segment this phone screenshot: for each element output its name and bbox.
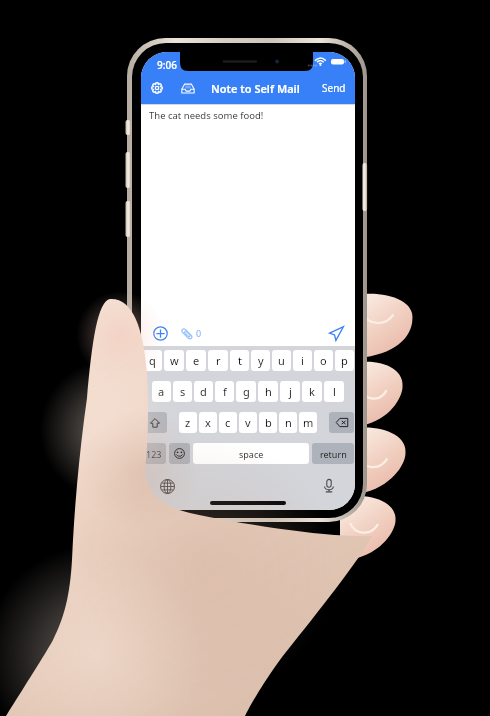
staticText: u — [278, 353, 285, 368]
staticText: l — [333, 384, 336, 399]
staticText: r — [216, 353, 221, 368]
button[interactable]: l — [324, 381, 344, 402]
button[interactable]: Dictation — [320, 477, 338, 495]
staticText: 9:06 — [157, 58, 177, 72]
button[interactable]: Settings — [145, 76, 169, 100]
staticText: c — [225, 415, 231, 430]
staticText: 123 — [146, 448, 162, 460]
button[interactable]: Attach — [176, 323, 196, 343]
staticText: b — [265, 415, 272, 430]
staticText: z — [185, 415, 191, 430]
button[interactable]: b — [259, 412, 277, 433]
button[interactable]: 123 — [142, 443, 166, 464]
button[interactable]: h — [258, 381, 278, 402]
button[interactable]: x — [199, 412, 217, 433]
staticText: 0 — [196, 327, 202, 339]
staticText: The cat needs some food! — [149, 109, 264, 122]
button[interactable]: Add — [149, 322, 171, 344]
button[interactable]: Language — [158, 477, 176, 495]
button[interactable]: v — [239, 412, 257, 433]
button[interactable]: q — [142, 350, 162, 371]
staticText: Send — [322, 81, 346, 95]
staticText: q — [149, 353, 156, 368]
button[interactable]: Send — [325, 322, 347, 344]
staticText: a — [158, 384, 165, 399]
staticText: g — [243, 384, 250, 399]
button[interactable]: i — [293, 350, 312, 371]
staticText: space — [239, 448, 264, 460]
button[interactable]: y — [251, 350, 270, 371]
staticText: k — [309, 384, 315, 399]
staticText: p — [341, 353, 348, 368]
button[interactable]: t — [230, 350, 249, 371]
staticText: e — [193, 353, 200, 368]
button[interactable]: Send — [322, 81, 346, 95]
staticText: Note to Self Mail — [211, 81, 300, 96]
button[interactable]: n — [279, 412, 297, 433]
button[interactable]: Backspace — [329, 412, 354, 433]
button[interactable]: c — [219, 412, 237, 433]
button[interactable]: j — [280, 381, 300, 402]
button[interactable]: Shift — [142, 412, 167, 433]
button[interactable]: space — [193, 443, 309, 464]
staticText: i — [301, 353, 304, 368]
staticText: w — [170, 353, 179, 368]
button[interactable]: r — [208, 350, 228, 371]
button[interactable]: e — [186, 350, 206, 371]
staticText: return — [320, 448, 347, 460]
staticText: m — [303, 415, 314, 430]
button[interactable]: g — [236, 381, 256, 402]
button[interactable]: s — [173, 381, 192, 402]
button[interactable]: w — [164, 350, 184, 371]
button[interactable]: return — [312, 443, 354, 464]
staticText: d — [200, 384, 207, 399]
button[interactable]: z — [179, 412, 197, 433]
staticText: x — [205, 415, 211, 430]
button[interactable]: a — [152, 381, 171, 402]
staticText: n — [285, 415, 292, 430]
button[interactable]: Emoji — [169, 443, 190, 464]
staticText: j — [289, 384, 292, 399]
staticText: f — [223, 384, 227, 399]
button[interactable]: f — [215, 381, 234, 402]
button[interactable]: p — [335, 350, 354, 371]
staticText: t — [238, 353, 242, 368]
button[interactable]: Inbox — [176, 76, 200, 100]
button[interactable]: d — [194, 381, 213, 402]
button[interactable]: k — [302, 381, 322, 402]
button[interactable]: m — [299, 412, 317, 433]
staticText: o — [320, 353, 327, 368]
staticText: h — [265, 384, 272, 399]
staticText: y — [258, 353, 264, 368]
button[interactable]: o — [314, 350, 333, 371]
staticText: v — [245, 415, 251, 430]
button[interactable]: u — [272, 350, 291, 371]
staticText: s — [180, 384, 186, 399]
